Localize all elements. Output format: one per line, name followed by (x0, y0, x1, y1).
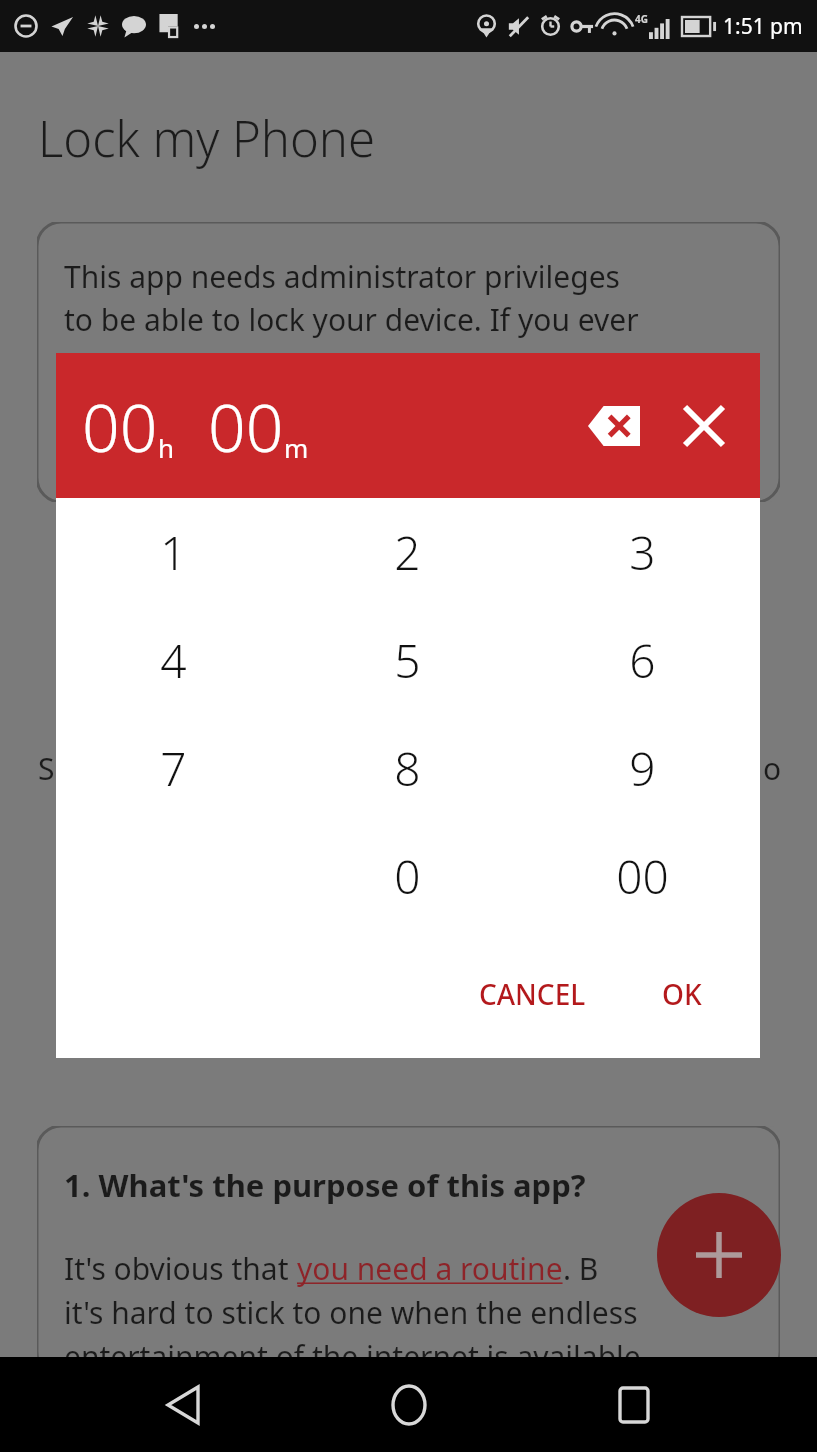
button[interactable]: 0 (290, 822, 525, 930)
staticText: h (158, 430, 175, 465)
button[interactable]: 1 (56, 498, 290, 606)
staticText: 4 (160, 629, 187, 692)
staticText: m (284, 430, 309, 465)
button[interactable]: 8 (290, 714, 525, 822)
button[interactable]: Recent apps (591, 1362, 677, 1448)
staticText: It's obvious that (64, 1248, 297, 1289)
staticText: 1 (160, 521, 187, 584)
staticText: Lock my Phone (38, 105, 376, 172)
button[interactable]: Back (140, 1362, 226, 1448)
staticText: This app needs administrator privileges … (64, 256, 639, 340)
staticText: 4G (635, 12, 648, 26)
button[interactable]: Home (366, 1362, 452, 1448)
button[interactable]: OK (648, 963, 716, 1025)
button[interactable]: 5 (290, 606, 525, 714)
staticText: 3 (629, 521, 656, 584)
staticText: S (38, 748, 55, 789)
staticText: 8 (394, 737, 421, 800)
button[interactable]: 2 (290, 498, 525, 606)
staticText: 2 (394, 521, 421, 584)
button[interactable]: 3 (525, 498, 760, 606)
button[interactable]: Backspace (578, 390, 650, 462)
button[interactable]: Add (657, 1193, 781, 1317)
staticText: 1. What's the purpose of this app? (64, 1164, 586, 1206)
staticText: you need a routine (297, 1248, 563, 1289)
button[interactable]: 00 (525, 822, 760, 930)
button[interactable]: 7 (56, 714, 290, 822)
staticText: CANCEL (479, 975, 586, 1013)
button[interactable]: Close (668, 390, 740, 462)
button[interactable]: CANCEL (465, 963, 600, 1025)
staticText: it's hard to stick to one when the endle… (64, 1292, 638, 1333)
staticText: 00 (208, 381, 284, 471)
staticText: entertainment of the internet is availab… (64, 1336, 641, 1376)
button[interactable]: 4 (56, 606, 290, 714)
staticText: 00 (616, 845, 669, 908)
staticText: 0 (394, 845, 421, 908)
staticText: o (763, 748, 782, 789)
staticText: OK (662, 975, 702, 1013)
staticText: 6 (629, 629, 656, 692)
button[interactable]: 9 (525, 714, 760, 822)
staticText: 5 (394, 629, 421, 692)
button[interactable]: 6 (525, 606, 760, 714)
staticText: 00 (82, 381, 158, 471)
staticText: 7 (160, 737, 187, 800)
staticText: . B (563, 1248, 599, 1289)
staticText: 1:51 pm (723, 12, 803, 41)
staticText: 9 (629, 737, 656, 800)
